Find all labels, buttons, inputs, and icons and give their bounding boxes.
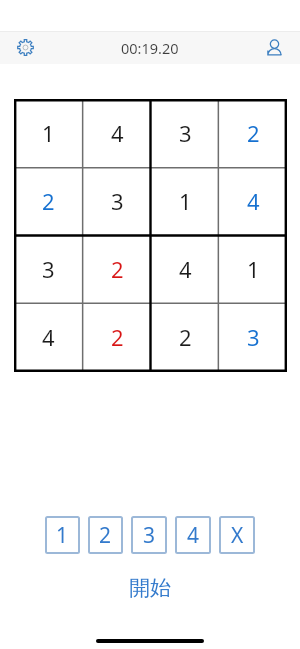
button[interactable]: 4 (83, 99, 151, 168)
button[interactable]: 2 (83, 236, 151, 304)
staticText: 2 (99, 521, 112, 550)
staticText: 2 (179, 322, 192, 352)
staticText: 3 (143, 521, 156, 550)
button[interactable]: 2 (14, 168, 83, 236)
button[interactable]: 3 (219, 304, 287, 372)
staticText: 1 (179, 186, 192, 216)
button[interactable]: 2 (88, 516, 123, 554)
staticText: 1 (247, 254, 260, 284)
button[interactable]: 3 (131, 516, 167, 554)
button[interactable]: 2 (219, 99, 287, 168)
button[interactable]: 3 (14, 236, 83, 304)
button[interactable]: 3 (151, 99, 219, 168)
staticText: 1 (56, 521, 69, 550)
button[interactable]: 3 (83, 168, 151, 236)
staticText: 2 (42, 186, 55, 216)
staticText: 2 (111, 322, 124, 352)
staticText: 3 (247, 322, 260, 352)
button[interactable]: 1 (219, 236, 287, 304)
button[interactable]: Settings (17, 39, 34, 56)
staticText: 4 (42, 322, 55, 352)
staticText: 1 (42, 118, 55, 148)
button[interactable]: X (219, 516, 255, 554)
staticText: 3 (42, 254, 55, 284)
staticText: 開始 (129, 575, 171, 601)
staticText: 4 (179, 254, 192, 284)
button[interactable]: 1 (45, 516, 80, 554)
staticText: X (231, 521, 244, 550)
staticText: 3 (111, 186, 124, 216)
button[interactable]: 4 (219, 168, 287, 236)
staticText: 00:19.20 (121, 38, 179, 58)
staticText: 4 (187, 521, 200, 550)
button[interactable]: 開始 (119, 573, 181, 603)
button[interactable]: 4 (151, 236, 219, 304)
staticText: 3 (179, 118, 192, 148)
staticText: 4 (111, 118, 124, 148)
button[interactable]: 2 (151, 304, 219, 372)
button[interactable]: 4 (14, 304, 83, 372)
button[interactable]: 2 (83, 304, 151, 372)
button[interactable]: 4 (175, 516, 211, 554)
button[interactable]: 1 (151, 168, 219, 236)
staticText: 2 (247, 118, 260, 148)
button[interactable]: Profile (266, 39, 283, 56)
staticText: 2 (111, 254, 124, 284)
button[interactable]: 1 (14, 99, 83, 168)
staticText: 4 (247, 186, 260, 216)
